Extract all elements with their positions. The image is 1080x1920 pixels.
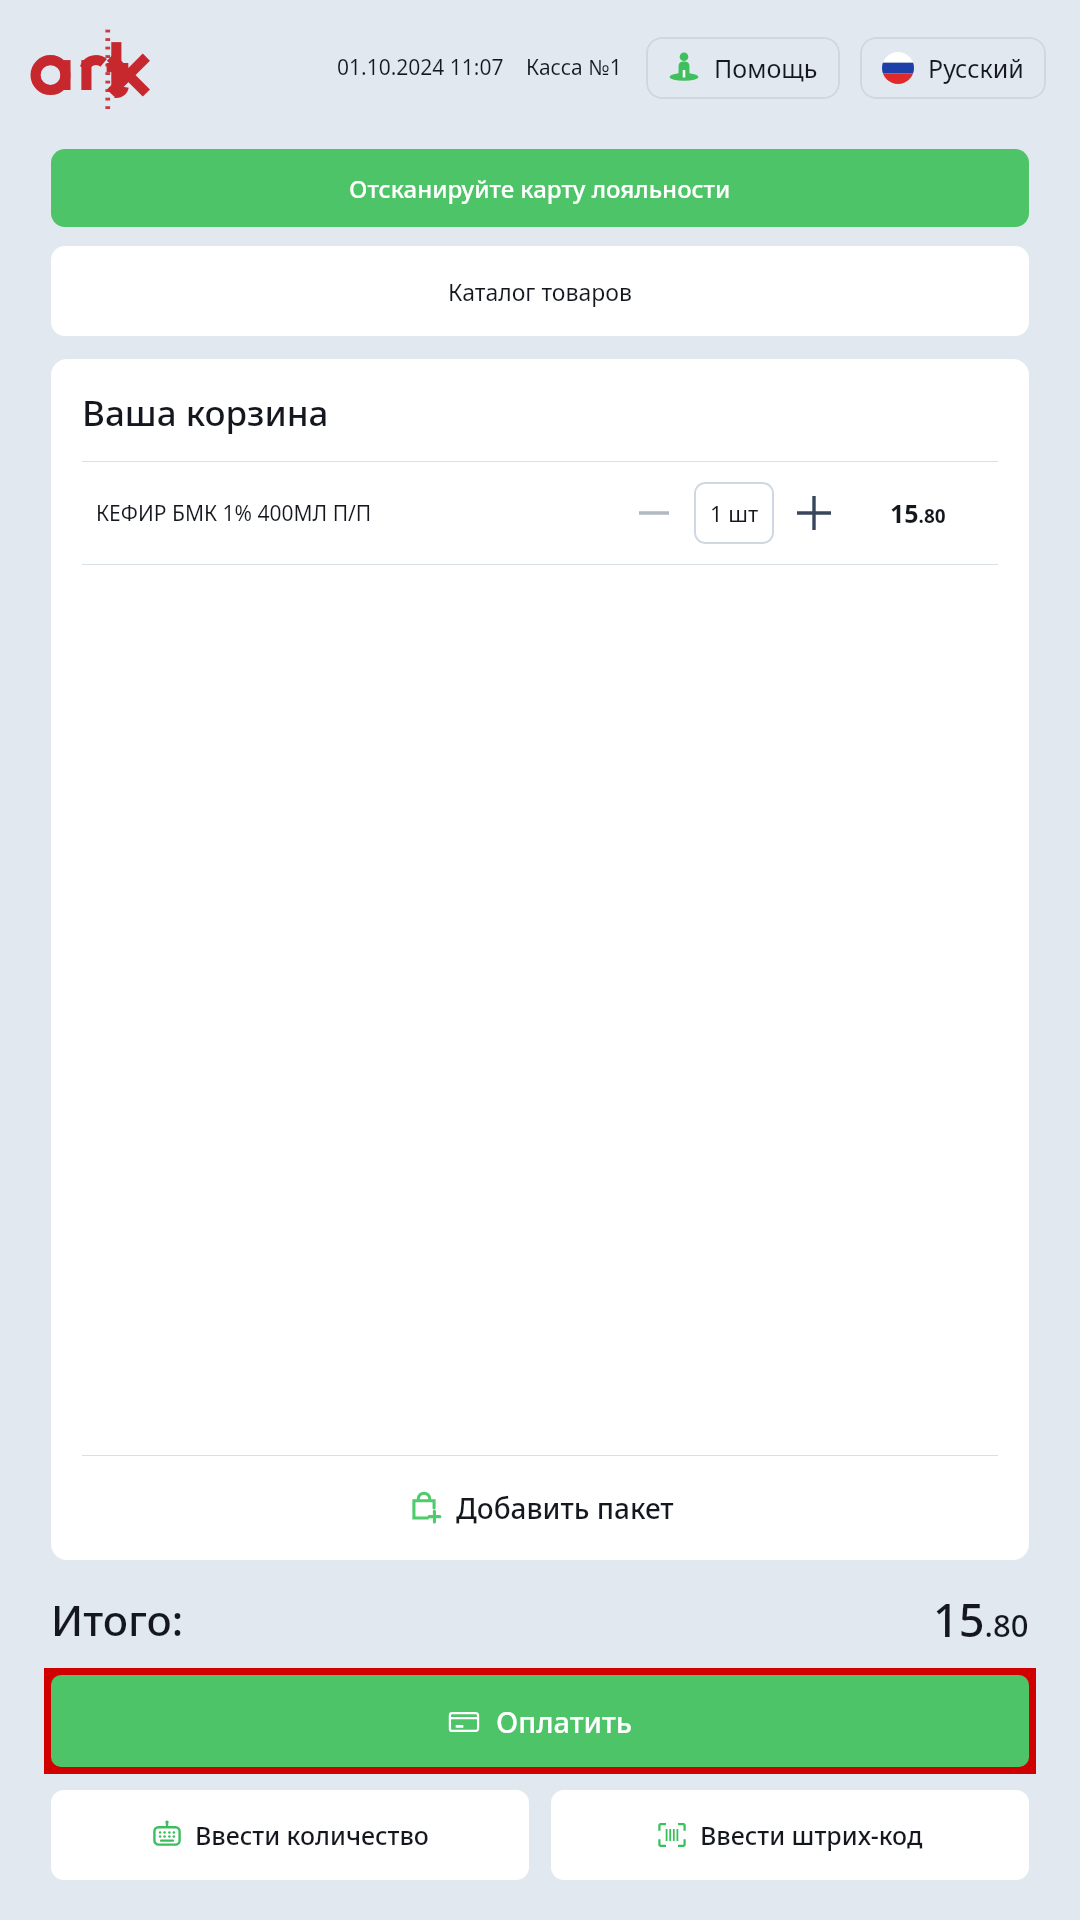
button[interactable]: Оплатить — [51, 1675, 1029, 1767]
button[interactable]: 1 шт — [694, 482, 774, 544]
staticText: 15.80 — [890, 496, 998, 530]
button[interactable]: Выбор языка: Русский — [860, 37, 1046, 99]
staticText: Русский — [928, 51, 1024, 85]
other: Artix Solutions — [34, 24, 152, 112]
button[interactable]: Помощь — [646, 37, 840, 99]
staticText: Каталог товаров — [448, 276, 632, 307]
button[interactable]: Уменьшить количество — [626, 485, 682, 541]
staticText: Касса №1 — [526, 53, 622, 82]
button[interactable]: Ввести количество — [51, 1790, 529, 1880]
staticText: Добавить пакет — [456, 1489, 674, 1527]
staticText: 01.10.2024 11:07 — [337, 53, 504, 82]
button[interactable]: Ввести штрих-код — [551, 1790, 1029, 1880]
staticText: КЕФИР БМК 1% 400МЛ П/П — [96, 499, 372, 528]
staticText: Оплатить — [496, 1702, 633, 1741]
staticText: 1 шт — [710, 498, 759, 528]
button[interactable]: Увеличить количество — [786, 485, 842, 541]
staticText: Ввести штрих-код — [700, 1818, 923, 1852]
button[interactable]: Добавить пакет — [51, 1456, 1029, 1560]
button[interactable]: Каталог товаров — [51, 246, 1029, 336]
staticText: Ваша корзина — [82, 389, 329, 437]
button[interactable]: Отсканируйте карту лояльности — [51, 149, 1029, 227]
staticText: Итого: — [51, 1591, 184, 1648]
staticText: 15.80 — [933, 1589, 1029, 1650]
staticText: Отсканируйте карту лояльности — [349, 172, 731, 205]
staticText: Помощь — [714, 51, 818, 85]
staticText: Ввести количество — [195, 1818, 429, 1852]
